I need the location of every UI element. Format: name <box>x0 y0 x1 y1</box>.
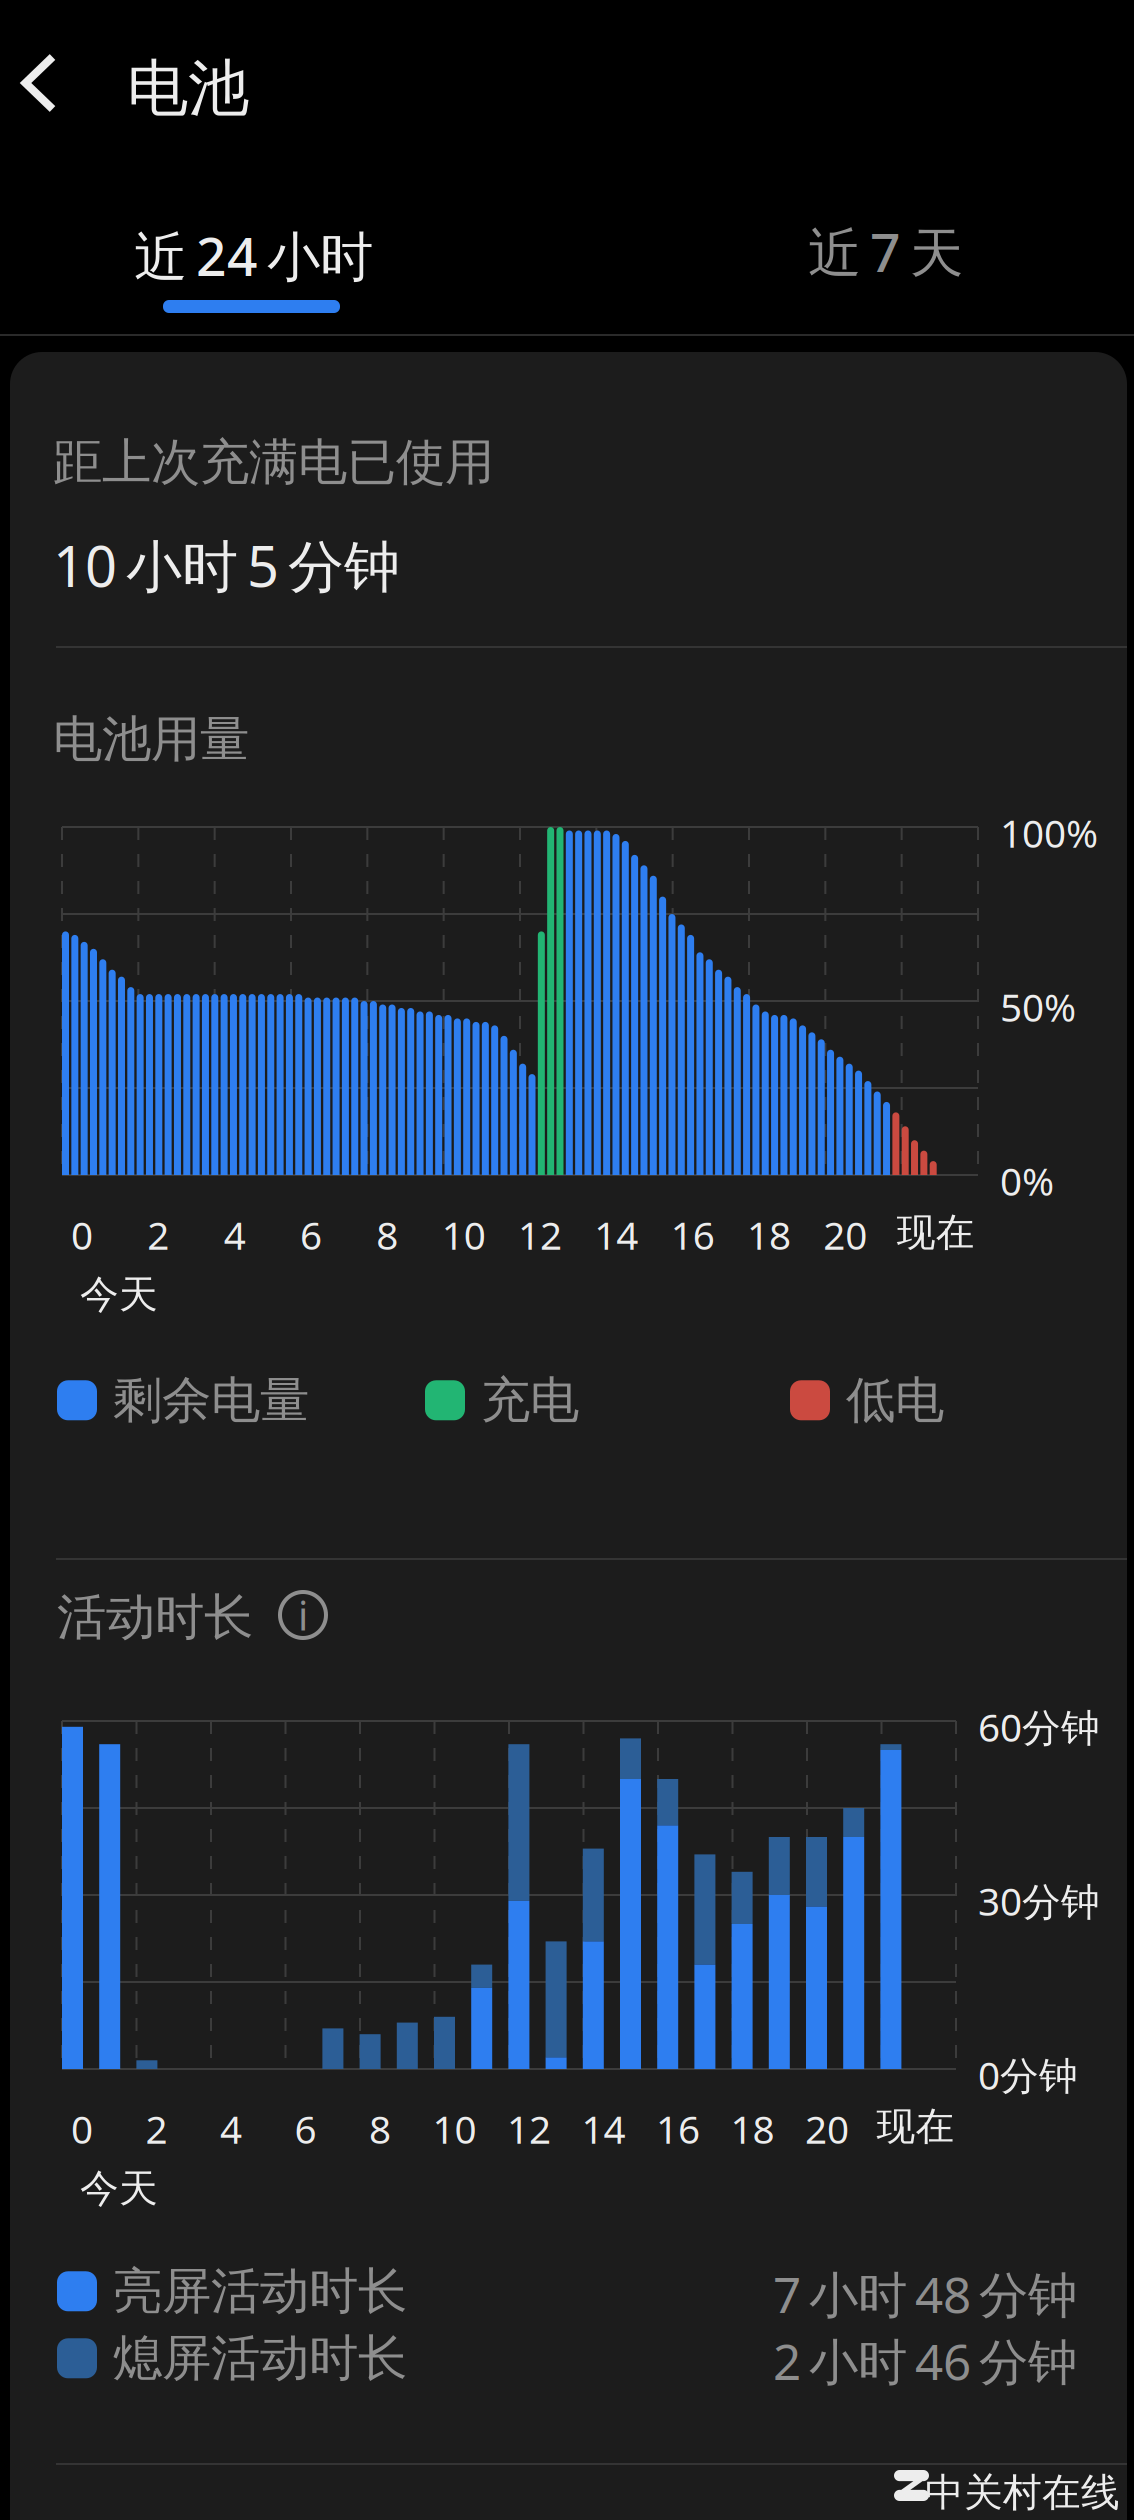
staticText: 今天 <box>80 2165 158 2212</box>
staticText: 0 <box>71 1209 93 1260</box>
staticText: 2 <box>145 2103 167 2154</box>
button[interactable]: 近 24 小时 <box>0 172 567 342</box>
staticText: 10 小时 5 分钟 <box>53 528 400 602</box>
staticText: 60分钟 <box>978 1701 1100 1752</box>
staticText: 亮屏活动时长 <box>113 2261 407 2322</box>
staticText: 16 <box>656 2103 700 2154</box>
staticText: 12 <box>507 2103 551 2154</box>
staticText: 4 <box>220 2103 242 2154</box>
staticText: 14 <box>581 2103 625 2154</box>
staticText: 16 <box>671 1209 715 1260</box>
staticText: 12 <box>518 1209 562 1260</box>
staticText: 8 <box>376 1209 398 1260</box>
staticText: 18 <box>747 1209 791 1260</box>
staticText: 8 <box>369 2103 391 2154</box>
staticText: 距上次充满电已使用 <box>53 432 494 493</box>
staticText: 20 <box>805 2103 849 2154</box>
staticText: 今天 <box>80 1271 158 1318</box>
staticText: 18 <box>730 2103 774 2154</box>
staticText: 中关村在线 <box>925 2469 1120 2516</box>
staticText: 低电 <box>846 1370 944 1431</box>
staticText: 30分钟 <box>978 1875 1100 1926</box>
button[interactable]: 近 7 天 <box>567 172 1134 342</box>
staticText: 10 <box>442 1209 486 1260</box>
staticText: 2 <box>147 1209 169 1260</box>
staticText: 7 小时 48 分钟 <box>773 2261 1077 2326</box>
staticText: 0 <box>71 2103 93 2154</box>
staticText: 2 小时 46 分钟 <box>773 2328 1077 2393</box>
staticText: 活动时长 <box>57 1587 253 1648</box>
staticText: 0% <box>1000 1155 1054 1206</box>
staticText: 现在 <box>897 1209 975 1256</box>
staticText: 6 <box>294 2103 316 2154</box>
staticText: 100% <box>1000 807 1098 858</box>
staticText: 近 24 小时 <box>134 220 373 291</box>
staticText: 电池用量 <box>53 709 249 770</box>
staticText: 熄屏活动时长 <box>113 2328 407 2389</box>
staticText: 14 <box>594 1209 638 1260</box>
button[interactable]: Back <box>0 8 95 158</box>
staticText: 20 <box>823 1209 867 1260</box>
staticText: 50% <box>1000 981 1076 1032</box>
staticText: 6 <box>300 1209 322 1260</box>
staticText: 充电 <box>481 1370 579 1431</box>
staticText: 4 <box>224 1209 246 1260</box>
staticText: 0分钟 <box>978 2049 1078 2100</box>
staticText: 电池 <box>127 51 249 126</box>
staticText: 剩余电量 <box>113 1370 309 1431</box>
staticText: 近 7 天 <box>808 216 963 287</box>
staticText: 10 <box>432 2103 476 2154</box>
staticText: 现在 <box>876 2103 954 2150</box>
staticText: i <box>298 1588 308 1641</box>
